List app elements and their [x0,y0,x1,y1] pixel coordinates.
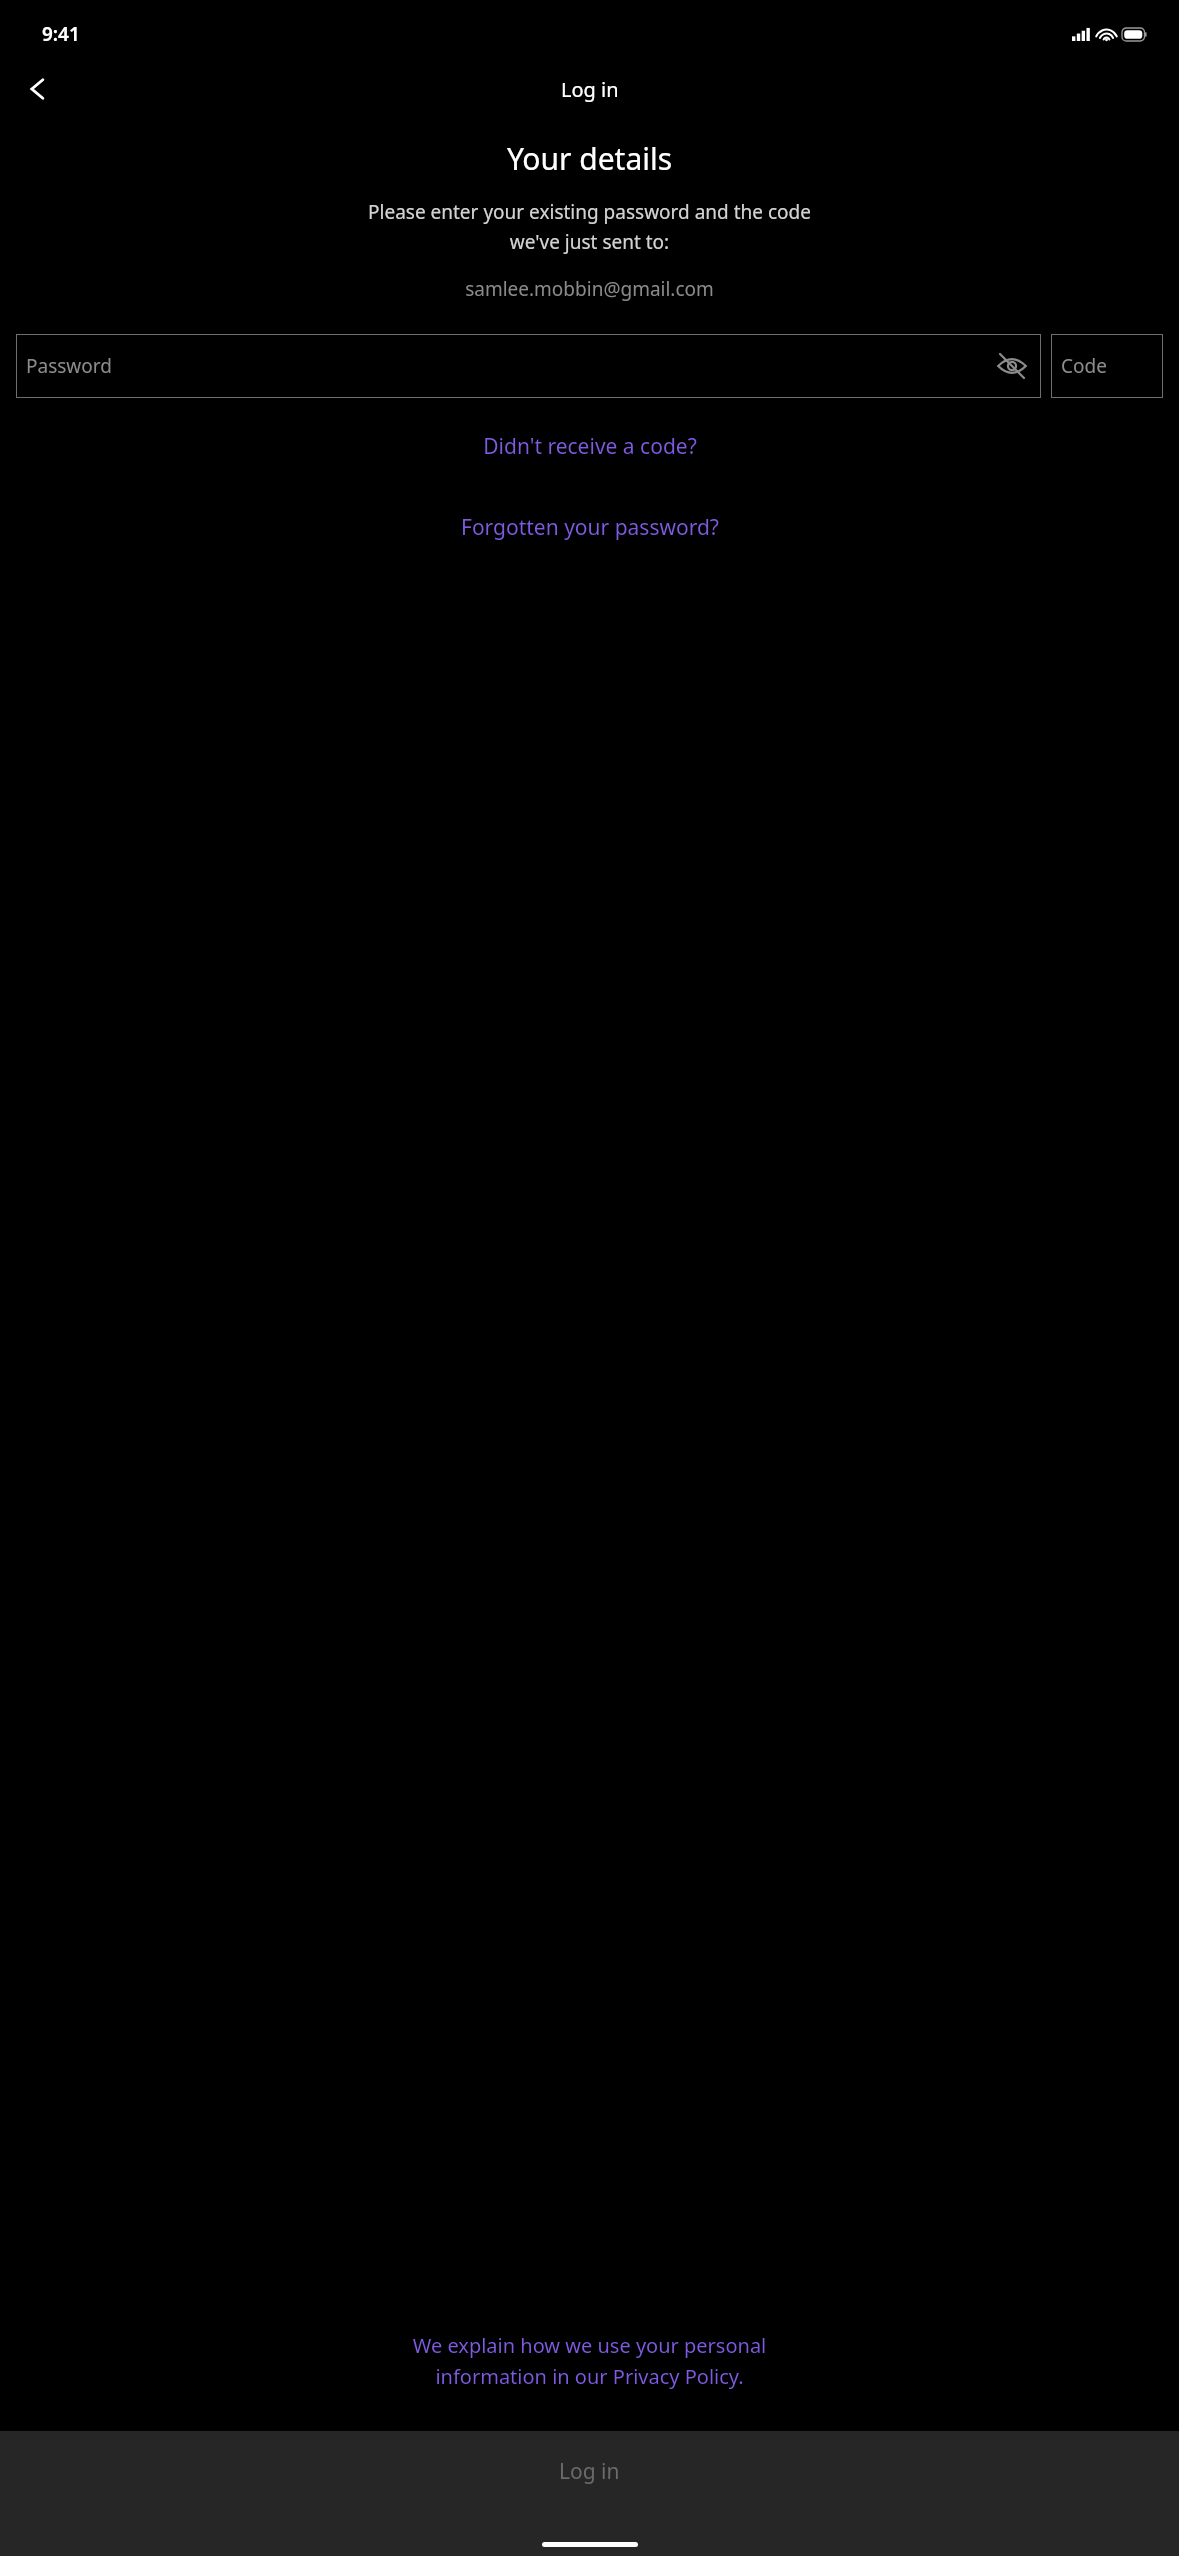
staticText: Log in [561,76,619,103]
button[interactable]: Forgotten your password? [0,513,1179,542]
staticText: We explain how we use your personal info… [24,2332,1155,2389]
staticText: 9:41 [42,21,80,47]
staticText: Password [26,353,112,379]
button[interactable]: Code [1051,334,1163,398]
staticText: Log in [559,2457,620,2486]
staticText: Forgotten your password? [461,513,719,542]
button[interactable]: Back [14,65,62,113]
staticText: Code [1061,353,1107,379]
button[interactable]: Didn't receive a code? [0,432,1179,461]
staticText: Your details [0,138,1179,179]
staticText: Please enter your existing password and … [22,199,1157,254]
staticText: Didn't receive a code? [483,432,697,461]
button[interactable]: Log in [0,2431,1179,2556]
button[interactable]: We explain how we use your personal info… [0,2332,1179,2389]
staticText: samlee.mobbin@gmail.com [0,276,1179,302]
button[interactable]: Password [16,334,1041,398]
button[interactable]: Show password [997,351,1027,381]
